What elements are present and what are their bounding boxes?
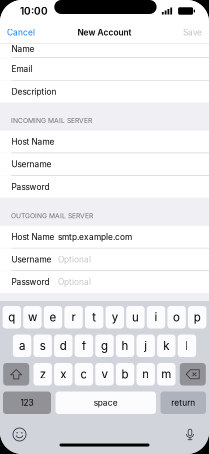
button[interactable]: t [85,306,103,328]
staticText: h [122,339,129,353]
staticText: return [171,398,195,408]
staticText: p [194,310,201,324]
button[interactable]: g [95,334,114,357]
staticText: smtp.example.com [58,232,132,242]
button[interactable]: Delete [180,363,206,385]
staticText: Cancel [7,27,35,37]
staticText: s [40,339,46,353]
button[interactable]: h [116,334,134,357]
staticText: Email [11,64,32,74]
button[interactable]: Emoji keyboard [13,428,26,441]
button[interactable]: a [13,334,31,357]
staticText: 10:00 [20,5,48,17]
staticText: t [92,310,96,324]
staticText: Password [11,277,49,287]
button[interactable]: k [157,334,175,357]
button[interactable]: Name [0,43,209,57]
staticText: g [101,339,108,353]
staticText: q [8,310,15,324]
staticText: OUTGOING MAIL SERVER [11,212,93,220]
staticText: Username [11,254,51,264]
button[interactable]: Cancel [0,22,41,43]
staticText: y [112,310,118,324]
button[interactable]: s [33,334,52,357]
button[interactable]: 123 [3,391,51,414]
button[interactable]: u [126,306,145,328]
button[interactable]: Username [0,153,209,175]
staticText: i [154,310,157,324]
staticText: Description [11,87,56,97]
staticText: u [132,310,139,324]
staticText: Save [183,27,202,37]
staticText: n [142,367,149,381]
staticText: r [72,310,76,324]
button[interactable]: y [106,306,124,328]
button[interactable]: Description [0,81,209,103]
staticText: New Account [77,27,131,37]
button[interactable]: Dictation [186,428,194,441]
button[interactable]: space [55,391,156,414]
staticText: l [185,339,188,353]
button[interactable]: Shift [3,363,29,385]
button[interactable]: c [75,363,93,385]
staticText: z [40,367,46,381]
button[interactable]: l [178,334,196,357]
button[interactable]: return [160,391,206,414]
button[interactable]: r [64,306,83,328]
staticText: Host Name [11,232,54,242]
staticText: j [144,339,147,353]
staticText: 123 [20,398,33,408]
staticText: w [28,310,37,324]
button[interactable]: j [136,334,155,357]
button[interactable]: p [188,306,206,328]
button[interactable]: n [136,363,155,385]
staticText: o [173,310,180,324]
button[interactable]: z [33,363,52,385]
button[interactable]: Save [177,22,209,43]
staticText: space [94,398,118,408]
button[interactable]: d [54,334,72,357]
button[interactable]: x [54,363,72,385]
button[interactable]: v [95,363,114,385]
staticText: d [60,339,67,353]
button[interactable]: q [3,306,21,328]
button[interactable]: e [44,306,62,328]
staticText: Optional [58,277,91,287]
button[interactable]: Host Name [0,226,209,248]
staticText: v [101,367,107,381]
button[interactable]: w [23,306,42,328]
staticText: x [60,367,66,381]
button[interactable]: i [147,306,165,328]
button[interactable]: Password [0,176,209,198]
staticText: Host Name [11,137,54,147]
button[interactable]: o [167,306,186,328]
button[interactable]: Password [0,271,209,293]
staticText: Username [11,159,51,169]
staticText: Optional [58,254,91,264]
staticText: c [80,367,87,381]
staticText: k [163,339,169,353]
button[interactable]: Username [0,248,209,270]
staticText: Name [11,44,34,54]
button[interactable]: Email [0,58,209,80]
button[interactable]: f [75,334,93,357]
staticText: b [122,367,129,381]
staticText: a [19,339,25,353]
button[interactable]: b [116,363,134,385]
staticText: Password [11,182,49,192]
staticText: INCOMING MAIL SERVER [11,117,92,125]
button[interactable]: m [157,363,175,385]
staticText: e [49,310,56,324]
button[interactable]: Host Name [0,131,209,153]
staticText: m [161,367,171,381]
staticText: f [82,339,86,353]
